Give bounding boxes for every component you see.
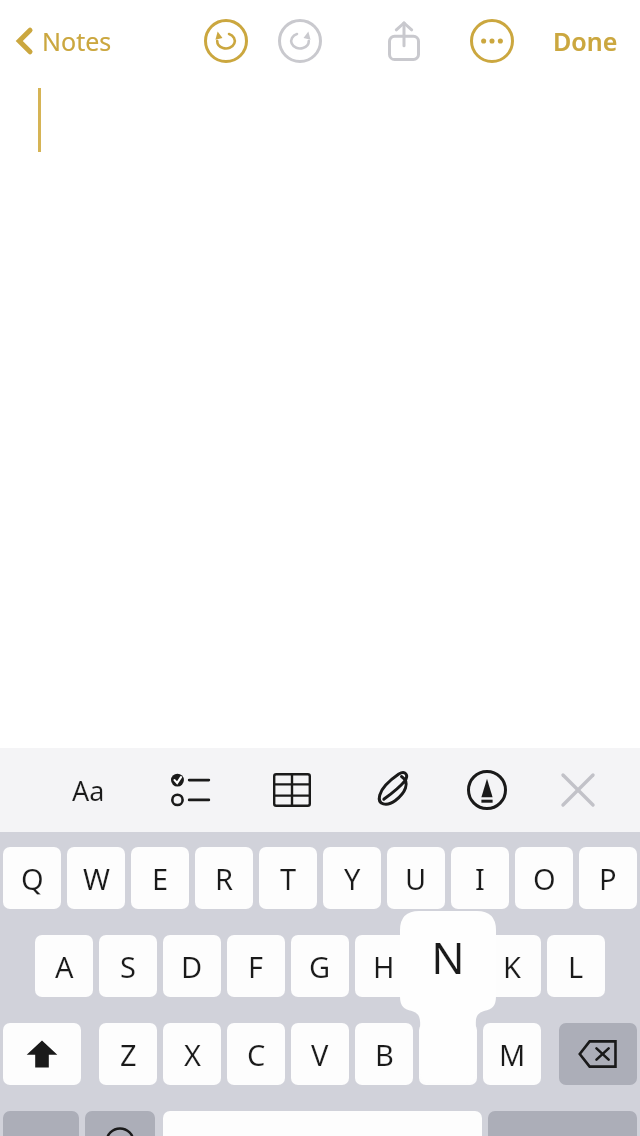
button[interactable]: Redo <box>274 15 326 67</box>
button[interactable]: I <box>451 847 509 909</box>
staticText: M <box>499 1035 526 1074</box>
staticText: P <box>599 859 617 898</box>
button[interactable]: Emoji <box>85 1111 155 1136</box>
staticText: B <box>375 1035 394 1074</box>
button[interactable]: F <box>227 935 285 997</box>
staticText: L <box>568 947 584 986</box>
button[interactable]: Hide keyboard <box>548 760 608 820</box>
staticText: G <box>309 947 331 986</box>
staticText: Q <box>21 859 44 898</box>
staticText: Z <box>120 1035 137 1074</box>
button[interactable]: Y <box>323 847 381 909</box>
staticText: Aa <box>72 772 105 809</box>
staticText: I <box>475 859 485 898</box>
button[interactable]: J <box>419 935 477 997</box>
button[interactable]: D <box>163 935 221 997</box>
button[interactable]: Share <box>378 15 430 67</box>
staticText: J <box>444 947 452 986</box>
staticText: O <box>533 859 556 898</box>
button[interactable]: G <box>291 935 349 997</box>
staticText: K <box>503 947 521 986</box>
button[interactable]: L <box>547 935 605 997</box>
button[interactable]: More options <box>466 15 518 67</box>
staticText: Done <box>553 24 618 58</box>
button[interactable]: T <box>259 847 317 909</box>
button[interactable]: B <box>355 1023 413 1085</box>
staticText: E <box>152 859 169 898</box>
staticText: H <box>373 947 395 986</box>
button[interactable]: K <box>483 935 541 997</box>
button[interactable]: P <box>579 847 637 909</box>
staticText: D <box>181 947 203 986</box>
button[interactable]: E <box>131 847 189 909</box>
button[interactable]: Z <box>99 1023 157 1085</box>
button[interactable]: N <box>419 1023 477 1085</box>
button[interactable]: Backspace <box>559 1023 637 1085</box>
button[interactable]: X <box>163 1023 221 1085</box>
button[interactable]: S <box>99 935 157 997</box>
button[interactable]: Shift <box>3 1023 81 1085</box>
staticText: A <box>55 947 74 986</box>
button[interactable]: Checklist <box>160 760 220 820</box>
button[interactable]: A <box>35 935 93 997</box>
button[interactable]: Notes <box>10 18 118 64</box>
button[interactable]: C <box>227 1023 285 1085</box>
staticText: S <box>120 947 136 986</box>
button[interactable]: Insert table <box>262 760 322 820</box>
button[interactable]: Done <box>547 18 624 64</box>
staticText: X <box>184 1035 201 1074</box>
button[interactable]: H <box>355 935 413 997</box>
staticText: Y <box>344 859 361 898</box>
staticText: F <box>248 947 264 986</box>
button[interactable]: M <box>483 1023 541 1085</box>
staticText: V <box>311 1035 329 1074</box>
staticText: N <box>431 927 465 987</box>
button[interactable]: Q <box>3 847 61 909</box>
staticText: C <box>247 1035 266 1074</box>
button[interactable]: R <box>195 847 253 909</box>
staticText: R <box>215 859 234 898</box>
staticText: W <box>83 859 110 898</box>
button[interactable]: Markup <box>457 760 517 820</box>
button[interactable]: Format text <box>58 760 118 820</box>
staticText: U <box>405 859 427 898</box>
button[interactable]: Attach file <box>362 760 422 820</box>
button[interactable]: V <box>291 1023 349 1085</box>
button[interactable]: W <box>67 847 125 909</box>
staticText: T <box>280 859 297 898</box>
button[interactable]: Numbers <box>3 1111 79 1136</box>
button[interactable]: U <box>387 847 445 909</box>
button[interactable]: Undo <box>200 15 252 67</box>
button[interactable]: O <box>515 847 573 909</box>
staticText: Notes <box>42 24 112 58</box>
